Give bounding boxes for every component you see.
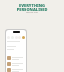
button[interactable] <box>11 36 14 39</box>
button[interactable] <box>18 36 21 39</box>
button[interactable] <box>7 36 10 39</box>
staticText: PERSONALISED <box>0 7 64 12</box>
button[interactable] <box>7 55 26 61</box>
staticText: just for you <box>0 11 64 14</box>
button[interactable] <box>7 67 26 72</box>
button[interactable] <box>7 61 26 67</box>
button[interactable] <box>15 36 18 39</box>
staticText: EVERYTHING <box>0 3 64 8</box>
button[interactable] <box>22 36 25 39</box>
